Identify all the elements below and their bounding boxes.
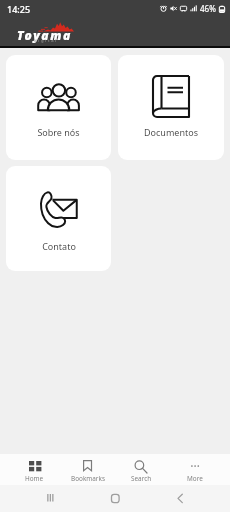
button[interactable]: Bookmarks bbox=[61, 454, 114, 485]
staticText: Documentos bbox=[144, 126, 198, 138]
button[interactable]: Home bbox=[8, 454, 61, 485]
staticText: Home bbox=[25, 474, 44, 483]
button[interactable]: More bbox=[168, 454, 222, 485]
button[interactable]: Sobre nós bbox=[6, 55, 111, 160]
staticText: Contato bbox=[42, 240, 76, 252]
button[interactable]: Contato bbox=[6, 166, 111, 271]
staticText: Search bbox=[131, 474, 152, 483]
staticText: 46% bbox=[200, 3, 216, 14]
staticText: 14:25 bbox=[7, 3, 31, 15]
button[interactable]: Back bbox=[173, 489, 190, 506]
staticText: Toyama bbox=[17, 27, 72, 43]
staticText: Sobre nós bbox=[37, 126, 80, 138]
staticText: d i g i t a l bbox=[34, 38, 57, 44]
button[interactable]: Recents bbox=[42, 489, 59, 506]
button[interactable]: Home bbox=[106, 489, 123, 506]
staticText: More bbox=[187, 474, 203, 483]
staticText: Bookmarks bbox=[71, 474, 105, 483]
button[interactable]: Search bbox=[114, 454, 168, 485]
button[interactable]: Documentos bbox=[118, 55, 224, 160]
